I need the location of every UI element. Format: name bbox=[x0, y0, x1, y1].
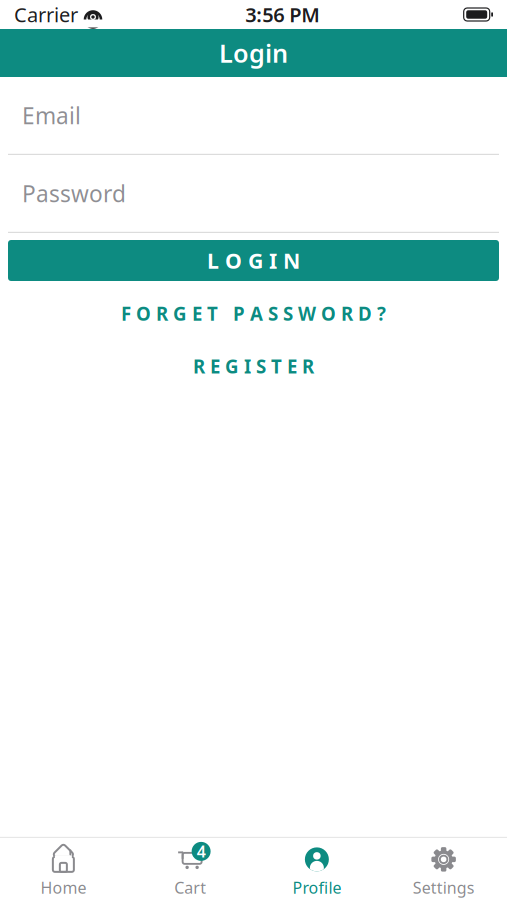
staticText: Password bbox=[22, 178, 126, 208]
staticText: F O R G E T P A S S W O R D ? bbox=[121, 301, 386, 326]
button[interactable]: Settings bbox=[380, 838, 507, 900]
staticText: 3:56 PM bbox=[245, 1, 320, 28]
staticText: R E G I S T E R bbox=[193, 354, 314, 379]
button[interactable]: Profile bbox=[253, 838, 380, 900]
staticText: Email bbox=[22, 100, 81, 130]
staticText: Profile bbox=[292, 877, 341, 898]
staticText: Settings bbox=[413, 877, 475, 898]
button[interactable]: F O R G E T P A S S W O R D ? bbox=[8, 292, 499, 335]
staticText: Cart bbox=[174, 877, 206, 898]
button[interactable]: Home bbox=[0, 838, 127, 900]
staticText: Carrier bbox=[14, 1, 78, 28]
button[interactable]: 4 bbox=[127, 838, 254, 900]
staticText: 4 bbox=[197, 841, 206, 862]
staticText: Home bbox=[40, 877, 86, 898]
staticText: Login bbox=[219, 36, 288, 70]
button[interactable]: L O G I N bbox=[8, 240, 499, 281]
button[interactable]: R E G I S T E R bbox=[8, 345, 499, 388]
staticText: L O G I N bbox=[207, 246, 300, 275]
